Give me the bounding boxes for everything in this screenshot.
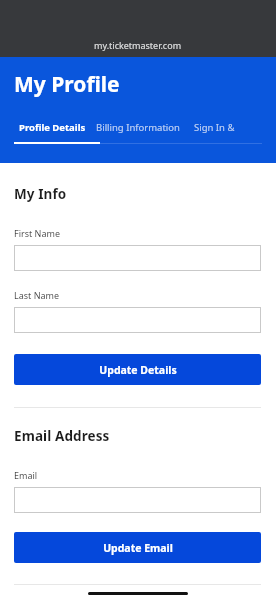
staticText: my.ticketmaster.com xyxy=(94,39,182,51)
button[interactable]: Profile Details xyxy=(0,117,96,138)
staticText: First Name xyxy=(14,227,60,239)
button[interactable] xyxy=(14,487,261,513)
staticText: Profile Details xyxy=(19,121,86,134)
button[interactable] xyxy=(14,307,261,333)
staticText: My Profile xyxy=(14,70,120,99)
staticText: Sign In & xyxy=(194,121,235,134)
button[interactable]: Update Details xyxy=(14,354,261,385)
staticText: Update Details xyxy=(99,363,177,377)
staticText: Email xyxy=(14,469,38,481)
staticText: Update Email xyxy=(103,541,173,555)
button[interactable]: Update Email xyxy=(14,532,261,563)
button[interactable]: Billing Information xyxy=(96,117,194,138)
staticText: My Info xyxy=(14,185,67,203)
staticText: Last Name xyxy=(14,289,60,301)
button[interactable]: Sign In & xyxy=(194,117,235,138)
button[interactable] xyxy=(14,245,261,271)
staticText: Email Address xyxy=(14,427,110,445)
staticText: Billing Information xyxy=(96,121,180,134)
